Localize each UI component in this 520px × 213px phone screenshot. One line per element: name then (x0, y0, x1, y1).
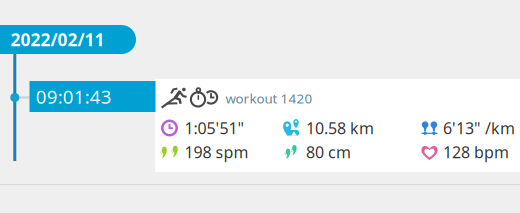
staticText: 6'13" /km (443, 117, 515, 139)
staticText: 128 bpm (443, 141, 509, 163)
button[interactable]: 2022/02/11 (0, 25, 136, 54)
staticText: 2022/02/11 (10, 28, 104, 51)
staticText: 80 cm (306, 141, 351, 163)
staticText: 10.58 km (306, 117, 374, 139)
button[interactable]: 09:01:43 (29, 81, 155, 112)
staticText: 1:05'51" (184, 117, 244, 139)
staticText: 09:01:43 (36, 84, 112, 109)
staticText: workout 1420 (225, 89, 312, 107)
staticText: 198 spm (184, 141, 248, 163)
